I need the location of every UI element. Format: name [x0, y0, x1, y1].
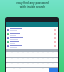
- button[interactable]: Period: [43, 68, 49, 72]
- button[interactable]: [6, 58, 12, 62]
- button[interactable]: [12, 58, 18, 62]
- button[interactable]: [43, 58, 48, 62]
- button[interactable]: [6, 27, 58, 32]
- button[interactable]: [6, 40, 58, 44]
- button[interactable]: [48, 63, 53, 67]
- button[interactable]: [6, 44, 58, 48]
- button[interactable]: [38, 63, 43, 67]
- button[interactable]: [48, 58, 53, 62]
- button[interactable]: [23, 58, 28, 62]
- button[interactable]: [6, 36, 58, 40]
- button[interactable]: [6, 32, 58, 36]
- button[interactable]: Comma: [14, 68, 20, 72]
- button[interactable]: [43, 63, 48, 67]
- button[interactable]: [23, 63, 28, 67]
- button[interactable]: [28, 63, 33, 67]
- button[interactable]: [33, 63, 38, 67]
- button[interactable]: [18, 63, 23, 67]
- button[interactable]: [6, 63, 12, 67]
- button[interactable]: [18, 58, 23, 62]
- button[interactable]: [53, 63, 58, 67]
- button[interactable]: [53, 58, 58, 62]
- button[interactable]: [33, 58, 38, 62]
- button[interactable]: Enter: [49, 68, 58, 72]
- staticText: easy find any password with inside searc…: [16, 1, 49, 8]
- button[interactable]: [12, 63, 18, 67]
- button[interactable]: [38, 58, 43, 62]
- button[interactable]: [28, 58, 33, 62]
